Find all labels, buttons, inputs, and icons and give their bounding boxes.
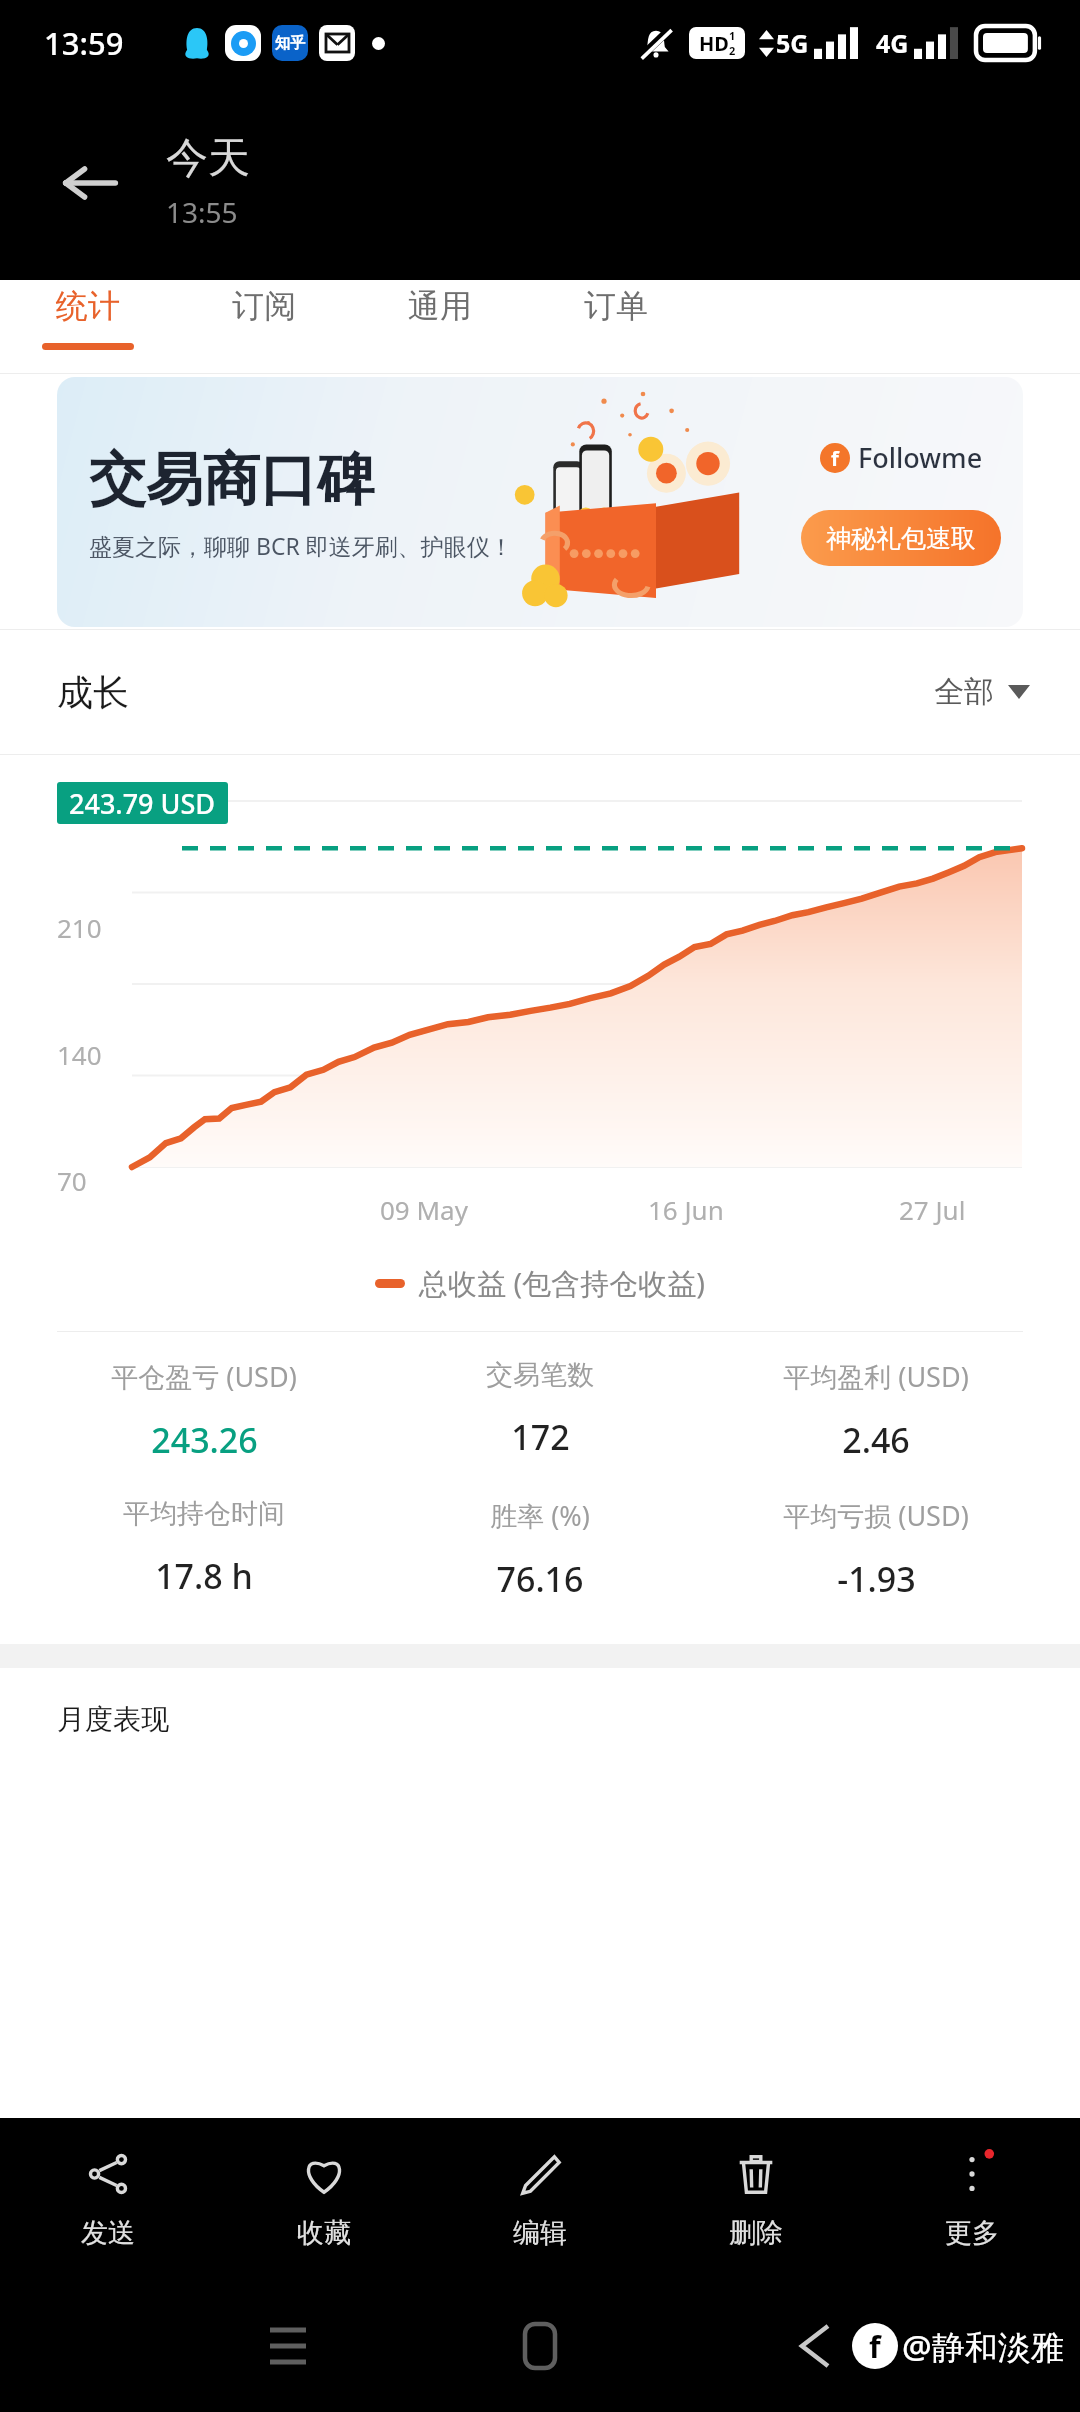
staticText: 210 [57,910,102,945]
staticText: 1 [729,28,736,43]
staticText: 总收益 (包含持仓收益) [419,1263,705,1303]
button[interactable]: 订阅 [218,286,310,350]
staticText: 16 Jun [648,1192,724,1227]
staticText: 发送 [81,2216,135,2250]
staticText: 70 [57,1163,87,1198]
button[interactable]: 更多 [864,2118,1080,2280]
button[interactable]: Back [782,2313,848,2379]
button[interactable]: Home [500,2306,580,2386]
staticText: 收藏 [297,2216,351,2250]
staticText: f [869,2326,881,2367]
staticText: 订阅 [232,286,296,326]
staticText: 76.16 [496,1556,584,1602]
staticText: 243.79 USD [69,785,216,822]
button[interactable]: 全部 [934,673,1030,711]
staticText: 胜率 (%) [490,1497,590,1534]
staticText: 平均持仓时间 [123,1497,285,1531]
staticText: 243.26 [151,1417,258,1463]
staticText: 27 Jul [899,1192,966,1227]
staticText: 平均亏损 (USD) [783,1497,969,1534]
staticText: 09 May [380,1192,468,1227]
staticText: 交易笔数 [486,1358,594,1392]
staticText: 删除 [729,2216,783,2250]
staticText: 平均盈利 (USD) [783,1358,969,1395]
staticText: -1.93 [837,1556,916,1602]
staticText: 订单 [584,286,648,326]
button[interactable]: 交易商口碑 [57,377,1023,627]
button[interactable]: Back [50,143,130,223]
staticText: 编辑 [513,2216,567,2250]
button[interactable]: 发送 [0,2118,216,2280]
button[interactable]: Recents [248,2306,328,2386]
staticText: 4G [876,26,909,60]
staticText: 知乎 [275,34,305,53]
staticText: @静和淡雅 [902,2324,1064,2369]
button[interactable]: 收藏 [216,2118,432,2280]
staticText: 2 [729,43,736,58]
staticText: 17.8 h [155,1553,253,1599]
staticText: 140 [57,1037,102,1072]
button[interactable]: 删除 [648,2118,864,2280]
staticText: 172 [511,1414,570,1460]
staticText: 统计 [56,286,120,326]
button[interactable]: 统计 [42,286,134,350]
staticText: 交易商口碑 [89,444,374,516]
staticText: 全部 [934,673,994,711]
button[interactable]: 神秘礼包速取 [801,510,1001,566]
staticText: 神秘礼包速取 [826,523,976,554]
staticText: 更多 [945,2216,999,2250]
staticText: 280 [57,784,102,819]
staticText: 13:59 [44,22,124,64]
staticText: f [831,445,839,472]
button[interactable]: 通用 [394,286,486,350]
button[interactable]: 编辑 [432,2118,648,2280]
staticText: 今天 [166,132,250,185]
staticText: 成长 [57,670,129,715]
staticText: Followme [858,439,983,476]
staticText: 通用 [408,286,472,326]
staticText: 2.46 [842,1417,910,1463]
button[interactable]: 订单 [570,286,662,350]
staticText: 月度表现 [57,1702,169,1737]
staticText: 13:55 [166,193,238,231]
staticText: 平仓盈亏 (USD) [111,1358,297,1395]
staticText: HD [699,30,729,57]
staticText: 5G [776,26,809,60]
staticText: 盛夏之际，聊聊 BCR 即送牙刷、护眼仪！ [89,530,513,561]
